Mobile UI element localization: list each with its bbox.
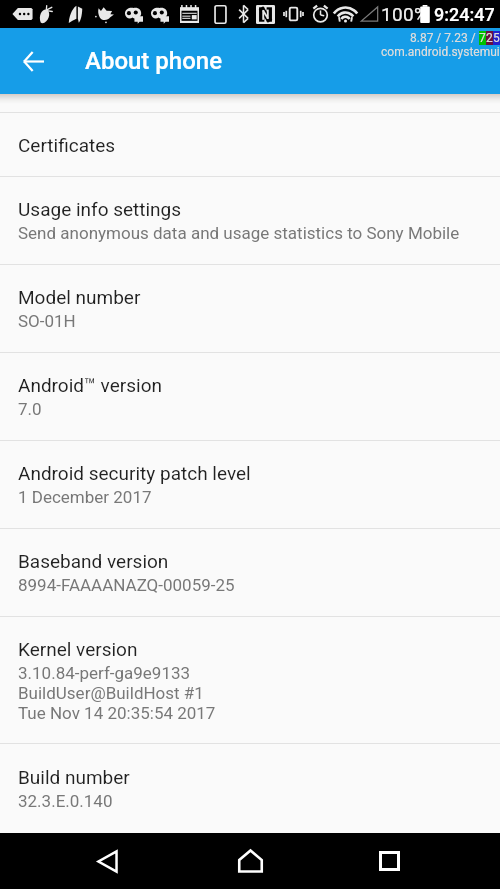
staticText: Android™ version: [18, 374, 162, 396]
staticText: Android security patch level: [18, 462, 251, 484]
staticText: 8994-FAAAANAZQ-00059-25: [18, 575, 235, 595]
button[interactable]: Kernel version: [0, 617, 500, 744]
staticText: Certificates: [18, 134, 116, 156]
button[interactable]: Recents: [350, 833, 428, 889]
staticText: 3.10.84-perf-ga9e9133: [18, 663, 191, 683]
staticText: About phone: [85, 47, 222, 75]
staticText: 100%: [381, 3, 429, 25]
staticText: BuildUser@BuildHost #1: [18, 683, 204, 703]
staticText: com.android.systemui: [381, 45, 500, 59]
button[interactable]: Certificates: [0, 113, 500, 177]
button[interactable]: Back: [11, 39, 55, 83]
staticText: 32.3.E.0.140: [18, 791, 113, 811]
button[interactable]: Baseband version: [0, 529, 500, 617]
staticText: SO-01H: [18, 311, 76, 331]
staticText: 8.87 / 7.23 /: [410, 31, 479, 45]
staticText: 1 December 2017: [18, 487, 152, 507]
staticText: 2: [486, 31, 493, 45]
staticText: 9:24:47: [434, 4, 495, 25]
staticText: 7: [479, 31, 486, 45]
staticText: Baseband version: [18, 550, 169, 572]
button[interactable]: Model number: [0, 265, 500, 353]
staticText: Model number: [18, 286, 141, 308]
button[interactable]: Usage info settings: [0, 177, 500, 265]
staticText: Tue Nov 14 20:35:54 2017: [18, 703, 216, 723]
staticText: Build number: [18, 766, 130, 788]
button[interactable]: Android™ version: [0, 353, 500, 441]
staticText: Kernel version: [18, 638, 138, 660]
button[interactable]: Home: [211, 833, 289, 889]
button[interactable]: Back: [68, 833, 146, 889]
staticText: Usage info settings: [18, 198, 182, 220]
button[interactable]: Android security patch level: [0, 441, 500, 529]
staticText: Send anonymous data and usage statistics…: [18, 223, 460, 243]
staticText: 5: [493, 31, 500, 45]
staticText: 7.0: [18, 399, 42, 419]
button[interactable]: Build number: [0, 744, 500, 832]
